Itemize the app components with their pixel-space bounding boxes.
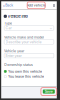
button[interactable]: You own this vehicle (4, 70, 54, 73)
staticText: ⌄ (49, 26, 52, 30)
staticText: Type (4, 21, 12, 25)
staticText: Ownership status (4, 63, 33, 67)
button[interactable]: Add vehicle (27, 2, 45, 9)
button[interactable]: Describe your vehicle (4, 40, 54, 44)
staticText: Vehicle info (8, 14, 28, 19)
staticText: Describe your vehicle (6, 40, 42, 44)
staticText: Back (5, 3, 13, 7)
staticText: Enter year (6, 53, 22, 58)
staticText: You lease this vehicle (8, 74, 44, 79)
button[interactable]: You lease this vehicle (4, 75, 54, 78)
button[interactable]: Menu (52, 2, 56, 9)
staticText: Add vehicle (27, 3, 46, 7)
staticText: Save (45, 89, 53, 94)
staticText: You own this vehicle (8, 69, 42, 73)
button[interactable]: Save (41, 88, 57, 95)
button[interactable]: Enter year (4, 53, 54, 58)
button[interactable]: ‹ (2, 2, 14, 9)
staticText: Vehicle make and model (4, 35, 44, 39)
staticText: ‹ (3, 3, 5, 8)
staticText: Car (6, 26, 12, 30)
staticText: Vehicle year (4, 49, 24, 53)
button[interactable]: Car (4, 26, 54, 30)
